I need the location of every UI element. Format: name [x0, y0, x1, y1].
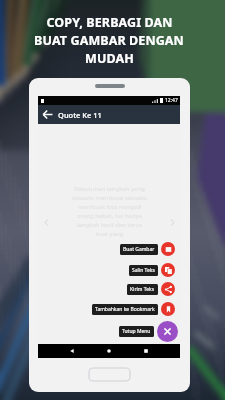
staticText: Kirim Teks	[130, 286, 155, 293]
staticText: Kebutuhan langkah yang sesuatu membuat s…	[72, 185, 147, 238]
button[interactable]: Tutup Menu	[119, 321, 178, 342]
staticText: BUAT GAMBAR DENGAN	[34, 32, 184, 49]
staticText: 12:47	[165, 97, 178, 104]
button[interactable]: Kirim Teks	[127, 282, 175, 296]
button[interactable]: Next quote	[166, 216, 178, 228]
button[interactable]: Buat Gambar	[120, 242, 175, 256]
staticText: Salin Teks	[132, 267, 155, 274]
staticText: MUDAH	[85, 50, 134, 67]
button[interactable]: Previous quote	[40, 216, 52, 228]
staticText: Tambahkan ke Bookmark	[95, 306, 155, 313]
staticText: Quote Ke 11	[58, 110, 102, 120]
button[interactable]: Tambahkan ke Bookmark	[92, 302, 175, 316]
button[interactable]: Back	[38, 105, 57, 124]
staticText: COPY, BERBAGI DAN	[46, 14, 173, 31]
button[interactable]: Salin Teks	[129, 263, 175, 277]
staticText: Tutup Menu	[122, 328, 151, 335]
staticText: Buat Gambar	[123, 246, 155, 253]
